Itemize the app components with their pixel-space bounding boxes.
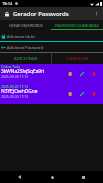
button[interactable]: Edit <box>76 84 88 104</box>
button[interactable]: Home <box>48 173 56 181</box>
button[interactable]: GERAR PASSWORDS <box>0 20 51 30</box>
staticText: 2025-09-05 17:13 <box>1 94 29 99</box>
button[interactable]: Delete <box>88 84 100 104</box>
button[interactable]: Recents <box>79 173 87 181</box>
button[interactable]: Delete <box>88 64 100 84</box>
staticText: 18:14 <box>2 1 13 6</box>
button[interactable]: PASSWORDS GUARDADAS <box>51 20 103 30</box>
staticText: ADICIONAR <box>14 56 38 62</box>
staticText: 2025-09-05 17:13 <box>1 74 29 79</box>
staticText: Online Tudo <box>1 64 21 69</box>
button[interactable]: CANCELAR <box>52 53 103 64</box>
button[interactable]: Copy <box>64 84 76 104</box>
button[interactable]: Edit <box>76 64 88 84</box>
staticText: N3YEJOwhDGne <box>1 88 38 95</box>
staticText: Gerador Passwords <box>13 10 69 18</box>
staticText: 3kWNa2SlvjSqEa9ri <box>1 68 45 75</box>
staticText: 2025-09-05 17:13 <box>1 84 29 89</box>
staticText: Adicionar título <box>7 34 35 39</box>
staticText: GERAR PASSWORDS <box>9 23 43 28</box>
button[interactable]: Copy <box>64 64 76 84</box>
button[interactable]: ADICIONAR <box>0 53 51 64</box>
staticText: PASSWORDS GUARDADAS <box>55 23 99 28</box>
button[interactable]: More options <box>92 9 101 18</box>
button[interactable]: Back <box>15 173 23 181</box>
staticText: CANCELAR <box>67 56 89 62</box>
staticText: Adicionar Password <box>7 45 43 50</box>
